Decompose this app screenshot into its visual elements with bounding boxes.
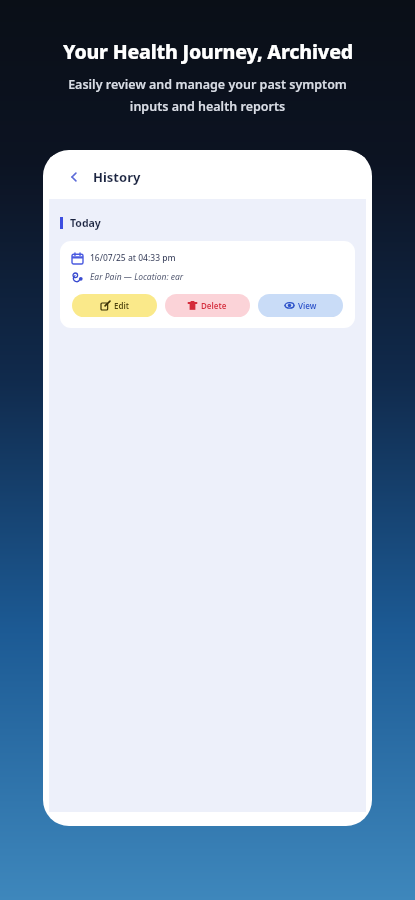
button[interactable]: View (258, 294, 343, 317)
button[interactable]: Edit (72, 294, 157, 317)
staticText: Today (70, 216, 101, 230)
staticText: View (298, 300, 317, 311)
staticText: 16/07/25 at 04:33 pm (90, 252, 176, 264)
staticText: History (93, 168, 141, 186)
staticText: Delete (201, 300, 227, 311)
staticText: Your Health Journey, Archived (63, 38, 353, 65)
button[interactable]: Delete (165, 294, 250, 317)
button[interactable]: Back (63, 166, 85, 188)
staticText: Easily review and manage your past sympt… (68, 76, 347, 115)
staticText: Ear Pain — Location: ear (90, 271, 184, 283)
staticText: Edit (114, 300, 129, 311)
button[interactable]: 16/07/25 at 04:33 pm (60, 241, 355, 328)
